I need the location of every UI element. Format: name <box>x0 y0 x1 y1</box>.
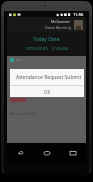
staticText: On <box>16 57 22 62</box>
staticText: Reason (if any) <box>10 111 37 116</box>
staticText: Today Date <box>33 36 60 43</box>
staticText: Good Morning <box>45 25 71 30</box>
staticText: Attendance Request Submit <box>16 74 82 81</box>
staticText: 11:56 <box>73 12 84 17</box>
button[interactable]: Recents <box>60 143 86 162</box>
button[interactable]: Home <box>34 143 60 162</box>
button[interactable]: OK <box>10 86 84 97</box>
button[interactable]: Back <box>7 143 34 162</box>
staticText: 2019-02-05 11:56:04 <box>26 46 68 52</box>
staticText: OK <box>44 89 51 95</box>
staticText: Mr.Sameer <box>51 19 71 24</box>
